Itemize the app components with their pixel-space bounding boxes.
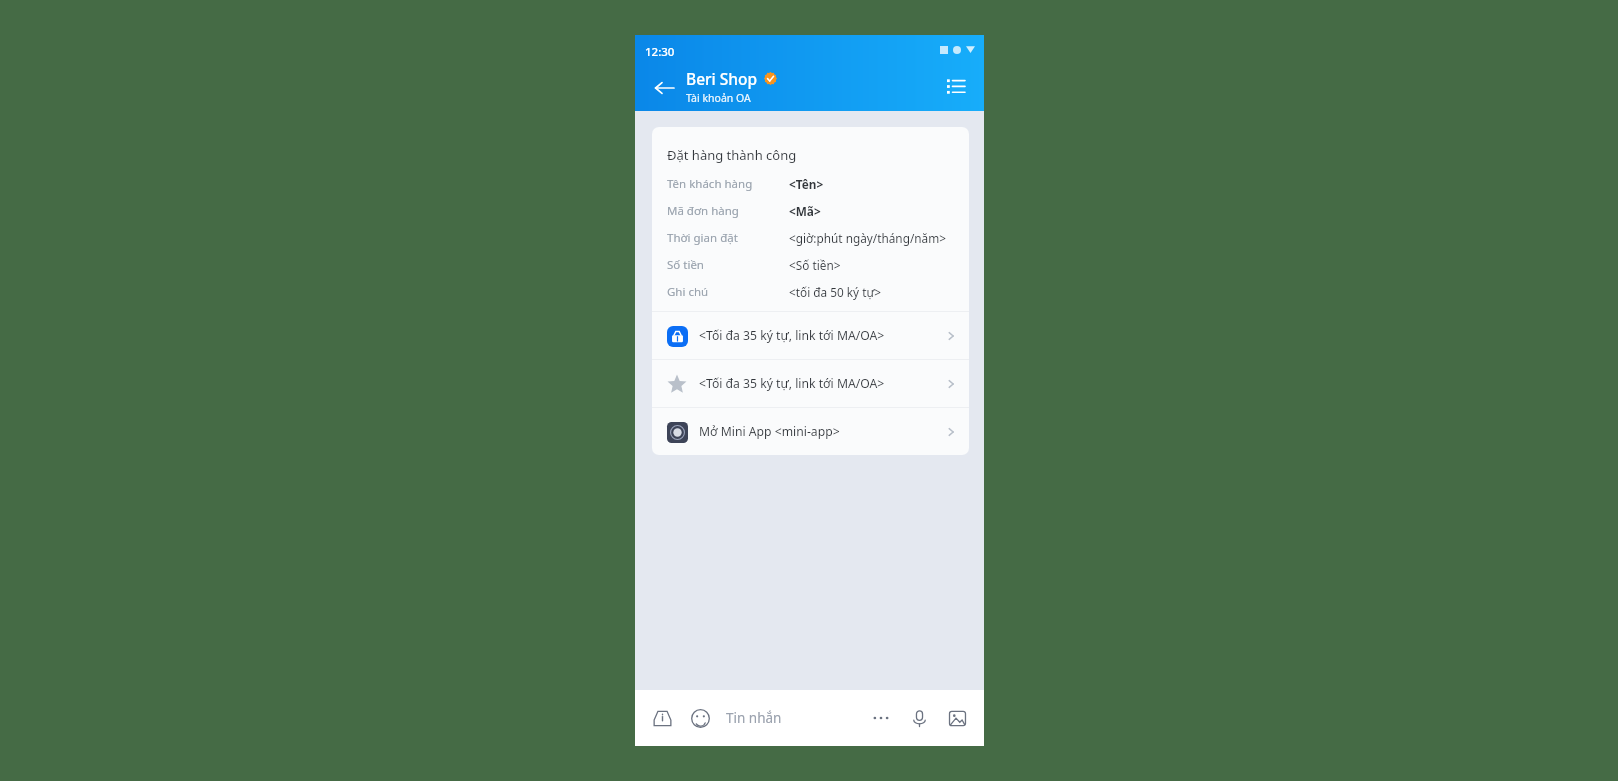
staticText: <giờ:phút ngày/tháng/năm> [789,230,946,246]
button[interactable]: Attach [649,705,675,731]
staticText: <Tối đa 35 ký tự, link tới MA/OA> [699,375,945,392]
button[interactable]: <Tối đa 35 ký tự, link tới MA/OA> [652,312,969,359]
button[interactable]: More [868,705,894,731]
button[interactable]: Menu [940,71,972,103]
staticText: <Mã> [789,203,821,219]
button[interactable]: Mở Mini App <mini-app> [652,408,969,455]
staticText: Ghi chú [667,284,789,300]
button[interactable]: Emoji [687,705,713,731]
staticText: <Tối đa 35 ký tự, link tới MA/OA> [699,327,945,344]
button[interactable]: Send image [944,705,970,731]
button[interactable]: Tin nhắn [726,709,868,727]
staticText: Mã đơn hàng [667,203,789,219]
staticText: <tối đa 50 ký tự> [789,284,882,300]
staticText: Thời gian đặt [667,230,789,246]
staticText: Tài khoản OA [686,91,751,105]
button[interactable]: Back [649,73,679,103]
button[interactable]: <Tối đa 35 ký tự, link tới MA/OA> [652,360,969,407]
staticText: Mở Mini App <mini-app> [699,423,945,440]
staticText: 12:30 [645,44,675,60]
button[interactable]: Voice message [906,705,932,731]
staticText: Đặt hàng thành công [667,146,797,164]
staticText: Số tiền [667,257,789,273]
staticText: Tên khách hàng [667,176,789,192]
staticText: <Tên> [789,176,824,192]
staticText: <Số tiền> [789,257,841,273]
staticText: Beri Shop [686,68,758,89]
